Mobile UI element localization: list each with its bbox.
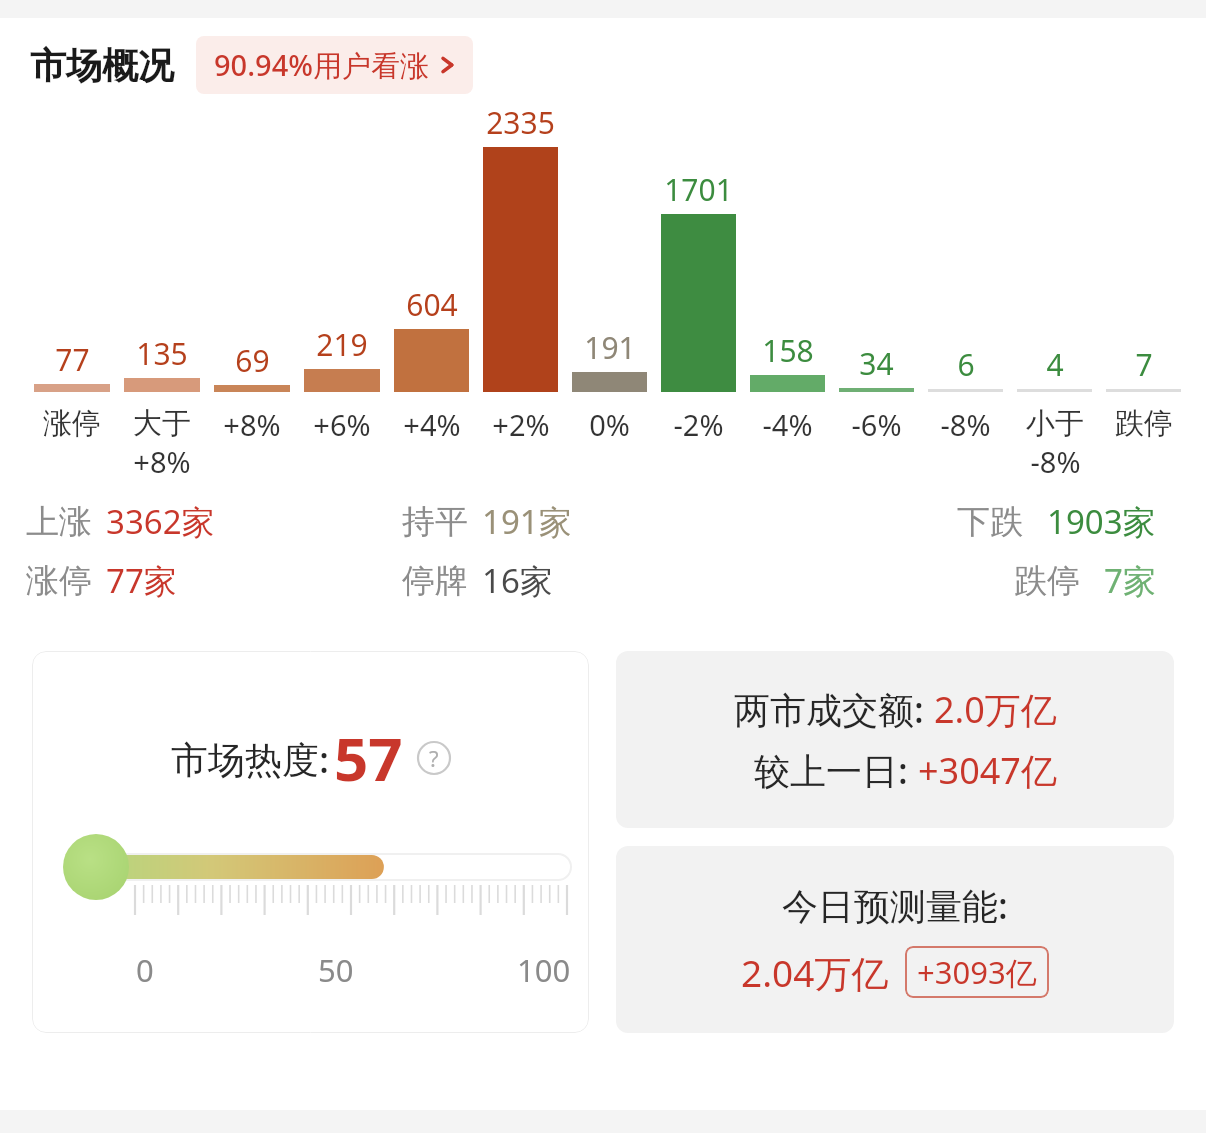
staticText: 停牌 — [402, 560, 468, 602]
staticText: 1701 — [664, 169, 733, 210]
staticText: 大于 — [133, 405, 191, 442]
staticText: 跌停 — [1014, 560, 1080, 602]
staticText: 90.94%用户看涨 — [214, 45, 429, 85]
button[interactable]: 7 — [1099, 102, 1188, 481]
staticText: 2.04万亿 — [741, 947, 889, 998]
staticText: 135 — [136, 333, 188, 374]
staticText: 57 — [334, 717, 403, 799]
staticText: 191 — [584, 327, 636, 368]
staticText: 4 — [1046, 344, 1064, 385]
staticText: 今日预测量能: — [782, 881, 1008, 930]
staticText: +3047亿 — [918, 746, 1057, 795]
button[interactable]: 219 — [297, 102, 387, 481]
staticText: 604 — [406, 284, 458, 325]
button[interactable]: 6 — [921, 102, 1010, 481]
button[interactable]: 158 — [743, 102, 832, 481]
button[interactable]: 停牌 — [402, 558, 779, 603]
staticText: 跌停 — [1115, 405, 1173, 442]
staticText: -8% — [1030, 442, 1081, 481]
staticText: 0 — [136, 949, 154, 991]
staticText: 小于 — [1026, 405, 1084, 442]
staticText: 191家 — [482, 499, 572, 544]
staticText: +4% — [403, 405, 461, 444]
staticText: 上涨 — [26, 501, 92, 543]
staticText: +6% — [313, 405, 371, 444]
staticText: 0% — [589, 405, 630, 444]
button[interactable]: 1701 — [654, 102, 743, 481]
staticText: 1903家 — [1047, 499, 1156, 544]
staticText: 219 — [316, 324, 368, 365]
button[interactable]: 191 — [565, 102, 654, 481]
staticText: 7家 — [1104, 558, 1156, 603]
button[interactable]: 135 — [117, 102, 207, 481]
staticText: 下跌 — [957, 501, 1023, 543]
staticText: +2% — [492, 405, 550, 444]
staticText: 77 — [55, 339, 90, 380]
staticText: +3093亿 — [917, 951, 1037, 993]
staticText: -4% — [762, 405, 813, 444]
button[interactable]: 两市成交额: — [616, 651, 1174, 828]
button[interactable]: 上涨 — [26, 499, 402, 544]
staticText: 3362家 — [106, 499, 215, 544]
staticText: 16家 — [482, 558, 553, 603]
staticText: 2335 — [486, 102, 555, 143]
staticText: 50 — [318, 949, 354, 991]
button[interactable]: 今日预测量能: — [616, 846, 1174, 1033]
staticText: 较上一日: — [754, 746, 908, 795]
button[interactable]: 90.94%用户看涨 — [196, 36, 473, 94]
button[interactable]: 跌停 — [779, 558, 1156, 603]
button[interactable]: 下跌 — [779, 499, 1156, 544]
staticText: 持平 — [402, 501, 468, 543]
staticText: 100 — [517, 949, 571, 991]
staticText: +8% — [223, 405, 281, 444]
staticText: 涨停 — [43, 405, 101, 442]
button[interactable]: 77 — [27, 102, 117, 481]
staticText: 市场热度: — [171, 733, 330, 784]
staticText: -8% — [940, 405, 991, 444]
staticText: +8% — [133, 442, 191, 481]
staticText: ? — [429, 743, 439, 773]
staticText: 158 — [762, 330, 814, 371]
staticText: 6 — [957, 344, 975, 385]
button[interactable]: 市场热度: — [32, 651, 589, 1033]
staticText: 涨停 — [26, 560, 92, 602]
staticText: 77家 — [106, 558, 177, 603]
button[interactable]: 持平 — [402, 499, 779, 544]
staticText: 69 — [235, 340, 270, 381]
staticText: -6% — [851, 405, 902, 444]
button[interactable]: 涨停 — [26, 558, 402, 603]
button[interactable]: 34 — [832, 102, 921, 481]
staticText: 市场概况 — [30, 43, 174, 88]
staticText: 7 — [1135, 344, 1153, 385]
button[interactable]: 2335 — [476, 102, 565, 481]
button[interactable]: 604 — [387, 102, 476, 481]
staticText: 34 — [859, 343, 894, 384]
button[interactable]: 69 — [207, 102, 297, 481]
staticText: 两市成交额: — [734, 685, 924, 734]
button[interactable]: 帮助说明 — [417, 741, 451, 775]
button[interactable]: 4 — [1010, 102, 1099, 481]
staticText: -2% — [673, 405, 724, 444]
staticText: 2.0万亿 — [934, 685, 1057, 734]
